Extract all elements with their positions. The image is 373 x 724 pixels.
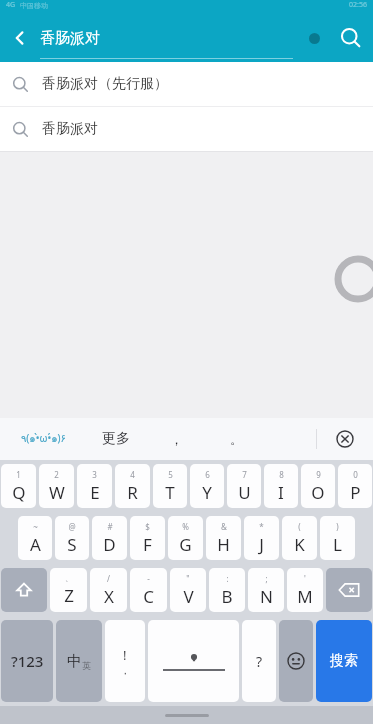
staticText: 02:56 xyxy=(349,0,367,10)
staticText: Y xyxy=(202,481,212,504)
staticText: 9 xyxy=(316,469,321,480)
staticText: ; xyxy=(265,573,268,584)
button[interactable]: Emoji xyxy=(279,620,313,702)
button[interactable]: 1 xyxy=(1,464,36,508)
staticText: ?123 xyxy=(11,651,44,671)
staticText: U xyxy=(238,481,251,504)
staticText: * xyxy=(259,521,264,532)
staticText: I xyxy=(278,481,284,504)
staticText: 英 xyxy=(82,660,91,671)
button[interactable]: 4 xyxy=(115,464,150,508)
staticText: R xyxy=(127,481,138,504)
button[interactable]: % xyxy=(168,516,203,560)
staticText: H xyxy=(217,533,230,556)
staticText: Z xyxy=(64,584,74,607)
staticText: 8 xyxy=(279,469,284,480)
button[interactable]: 搜索 xyxy=(316,620,372,702)
staticText: 、 xyxy=(65,573,73,583)
button[interactable]: 7 xyxy=(227,464,261,508)
staticText: @ xyxy=(68,521,76,532)
staticText: 0 xyxy=(353,469,358,480)
button[interactable]: Clear xyxy=(299,23,329,53)
staticText: 香肠派对 xyxy=(40,29,100,48)
button[interactable]: 中 xyxy=(56,620,102,702)
staticText: : xyxy=(226,573,229,584)
button[interactable]: ( xyxy=(282,516,317,560)
staticText: 6 xyxy=(205,469,210,480)
button[interactable]: Close keyboard xyxy=(317,418,373,460)
staticText: Q xyxy=(12,481,26,504)
staticText: ( xyxy=(298,521,301,532)
button[interactable]: Backspace xyxy=(326,568,372,612)
button[interactable]: * xyxy=(244,516,279,560)
button[interactable]: $ xyxy=(130,516,165,560)
button[interactable]: 8 xyxy=(264,464,298,508)
button[interactable]: 、 xyxy=(50,568,87,612)
staticText: 4 xyxy=(130,469,135,480)
staticText: 2 xyxy=(54,469,59,480)
staticText: # xyxy=(107,521,113,532)
button[interactable]: Back xyxy=(0,14,40,62)
staticText: 5 xyxy=(168,469,173,480)
button[interactable]: & xyxy=(206,516,241,560)
staticText: ~ xyxy=(33,521,38,532)
button[interactable]: @ xyxy=(55,516,89,560)
staticText: C xyxy=(143,585,154,608)
button[interactable]: 香肠派对（先行服） xyxy=(0,62,373,106)
button[interactable]: ?123 xyxy=(1,620,53,702)
staticText: 更多 xyxy=(102,430,130,448)
staticText: 中国移动 xyxy=(20,1,48,10)
button[interactable]: # xyxy=(92,516,127,560)
button[interactable]: 3 xyxy=(77,464,112,508)
button[interactable]: ~ xyxy=(18,516,52,560)
staticText: B xyxy=(221,585,233,608)
button[interactable]: 5 xyxy=(153,464,187,508)
button[interactable]: Search xyxy=(329,14,373,62)
button[interactable]: : xyxy=(209,568,245,612)
button[interactable]: 香肠派对 xyxy=(40,14,293,62)
button[interactable]: 0 xyxy=(338,464,372,508)
button[interactable]: 更多 xyxy=(86,418,146,460)
button[interactable]: 9 xyxy=(301,464,335,508)
button[interactable]: ٩(๑•̀ω•́๑)۶ xyxy=(0,418,86,460)
staticText: ， xyxy=(170,431,183,447)
staticText: 1 xyxy=(16,469,21,480)
staticText: % xyxy=(182,521,189,532)
staticText: V xyxy=(183,585,194,608)
staticText: P xyxy=(350,481,361,504)
staticText: ! xyxy=(123,646,127,664)
button[interactable]: ! xyxy=(105,620,145,702)
button[interactable]: ) xyxy=(320,516,355,560)
staticText: W xyxy=(49,481,65,504)
staticText: N xyxy=(260,585,273,608)
button[interactable]: 。 xyxy=(206,418,266,460)
button[interactable]: 香肠派对 xyxy=(0,107,373,151)
staticText: " xyxy=(186,573,190,584)
staticText: E xyxy=(90,481,100,504)
button[interactable]: ; xyxy=(248,568,284,612)
button[interactable]: ， xyxy=(146,418,206,460)
button[interactable]: - xyxy=(130,568,167,612)
staticText: O xyxy=(311,481,325,504)
staticText: ' xyxy=(304,573,306,584)
staticText: 中 xyxy=(67,652,82,671)
button[interactable]: ? xyxy=(242,620,276,702)
staticText: ) xyxy=(336,521,339,532)
button[interactable]: " xyxy=(170,568,206,612)
staticText: S xyxy=(67,533,77,556)
staticText: ? xyxy=(256,652,263,671)
staticText: A xyxy=(30,533,41,556)
staticText: L xyxy=(333,533,342,556)
button[interactable]: 2 xyxy=(39,464,74,508)
button[interactable]: 6 xyxy=(190,464,224,508)
staticText: / xyxy=(107,573,110,584)
button[interactable]: Space xyxy=(148,620,239,702)
button[interactable]: Shift xyxy=(1,568,47,612)
button[interactable]: / xyxy=(90,568,127,612)
staticText: ٩(๑•̀ω•́๑)۶ xyxy=(21,431,66,447)
staticText: 3 xyxy=(92,469,97,480)
staticText: & xyxy=(221,521,227,532)
staticText: D xyxy=(103,533,116,556)
staticText: - xyxy=(147,573,150,584)
button[interactable]: ' xyxy=(287,568,323,612)
